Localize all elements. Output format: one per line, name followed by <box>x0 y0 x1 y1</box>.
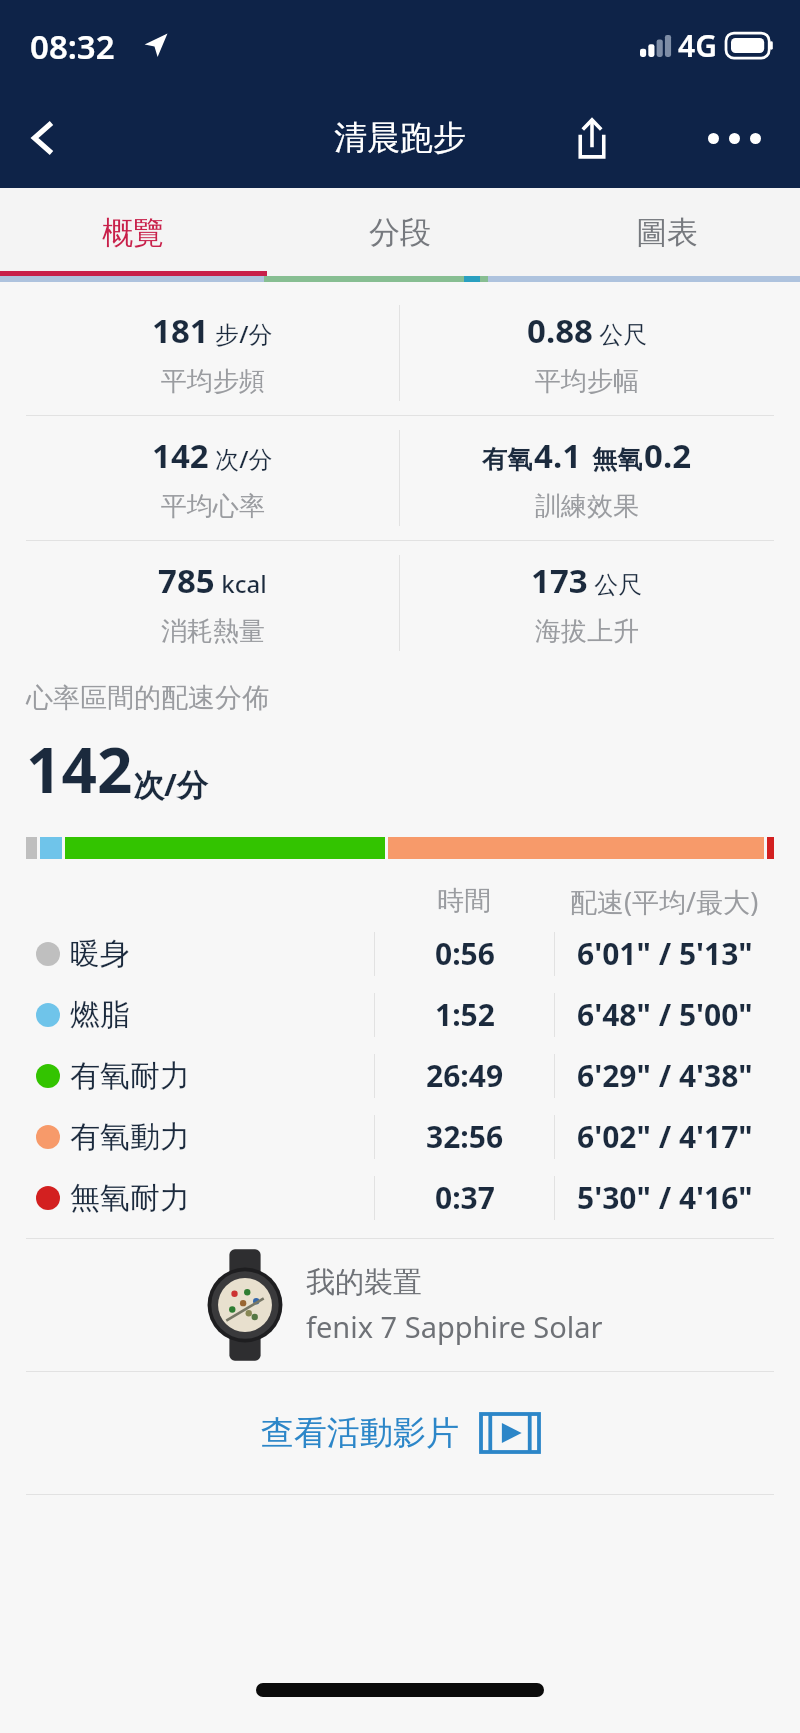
button[interactable]: 查看活動影片 <box>0 1372 800 1494</box>
staticText: fenix 7 Sapphire Solar <box>306 1307 603 1346</box>
staticText: 圖表 <box>636 213 698 252</box>
staticText: 5'30" / 4'16" <box>577 1177 753 1218</box>
staticText: 查看活動影片 <box>261 1412 459 1454</box>
staticText: 142 <box>26 727 133 811</box>
staticText: 4G <box>678 25 717 66</box>
staticText: 平均步頻 <box>161 365 265 398</box>
button[interactable]: 概覽 <box>0 188 266 276</box>
staticText: 步/分 <box>209 317 273 350</box>
staticText: 0.88 <box>527 308 593 353</box>
staticText: 配速(平均/最大) <box>570 883 759 920</box>
staticText: 無氧 <box>592 444 642 475</box>
staticText: 清晨跑步 <box>334 117 466 159</box>
staticText: 173 <box>531 558 588 603</box>
staticText: 0.2 <box>644 433 692 478</box>
staticText: 無氧耐力 <box>70 1179 374 1217</box>
staticText: 心率區間的配速分佈 <box>26 681 269 715</box>
staticText: 1:52 <box>435 994 495 1035</box>
button[interactable]: 圖表 <box>533 188 800 276</box>
button[interactable]: More options <box>696 100 772 176</box>
staticText: 公尺 <box>588 567 643 600</box>
staticText: 次/分 <box>133 763 208 805</box>
staticText: 消耗熱量 <box>161 615 265 648</box>
staticText: 有氧動力 <box>70 1118 374 1156</box>
button[interactable]: 無氧耐力 <box>26 1167 774 1228</box>
staticText: 有氧 <box>482 444 532 475</box>
staticText: 海拔上升 <box>535 615 639 648</box>
button[interactable]: 181 <box>26 291 399 415</box>
staticText: 概覽 <box>102 213 164 252</box>
staticText: 6'29" / 4'38" <box>577 1055 753 1096</box>
button[interactable]: 分段 <box>266 188 533 276</box>
staticText: 26:49 <box>426 1055 504 1096</box>
staticText: 6'48" / 5'00" <box>577 994 753 1035</box>
staticText: 4.1 <box>534 433 582 478</box>
staticText: 平均步幅 <box>535 365 639 398</box>
staticText: 785 <box>158 558 215 603</box>
staticText: 142 <box>152 433 209 478</box>
button[interactable]: 173 <box>400 541 774 665</box>
staticText: 181 <box>152 308 209 353</box>
staticText: 我的裝置 <box>306 1264 422 1301</box>
button[interactable]: Back <box>8 102 80 174</box>
staticText: 0:37 <box>435 1177 495 1218</box>
staticText: 6'02" / 4'17" <box>577 1116 753 1157</box>
staticText: 有氧耐力 <box>70 1057 374 1095</box>
staticText: 32:56 <box>426 1116 504 1157</box>
staticText: 時間 <box>437 884 491 918</box>
button[interactable]: Share <box>556 102 628 174</box>
button[interactable]: 0.88 <box>400 291 774 415</box>
button[interactable]: 我的裝置 <box>0 1239 800 1371</box>
staticText: 公尺 <box>593 317 648 350</box>
staticText: 訓練效果 <box>535 490 639 523</box>
button[interactable]: 暖身 <box>26 923 774 984</box>
staticText: kcal <box>215 567 267 600</box>
staticText: 6'01" / 5'13" <box>577 933 753 974</box>
button[interactable]: 有氧 <box>400 416 774 540</box>
button[interactable]: 燃脂 <box>26 984 774 1045</box>
staticText: 平均心率 <box>161 490 265 523</box>
staticText: 暖身 <box>70 935 374 973</box>
staticText: 分段 <box>369 213 431 252</box>
staticText: 燃脂 <box>70 996 374 1034</box>
staticText: 次/分 <box>209 442 273 475</box>
button[interactable]: 有氧耐力 <box>26 1045 774 1106</box>
staticText: 0:56 <box>435 933 495 974</box>
button[interactable]: 有氧動力 <box>26 1106 774 1167</box>
button[interactable]: 785 <box>26 541 399 665</box>
button[interactable]: 142 <box>26 416 399 540</box>
staticText: 08:32 <box>30 24 115 69</box>
